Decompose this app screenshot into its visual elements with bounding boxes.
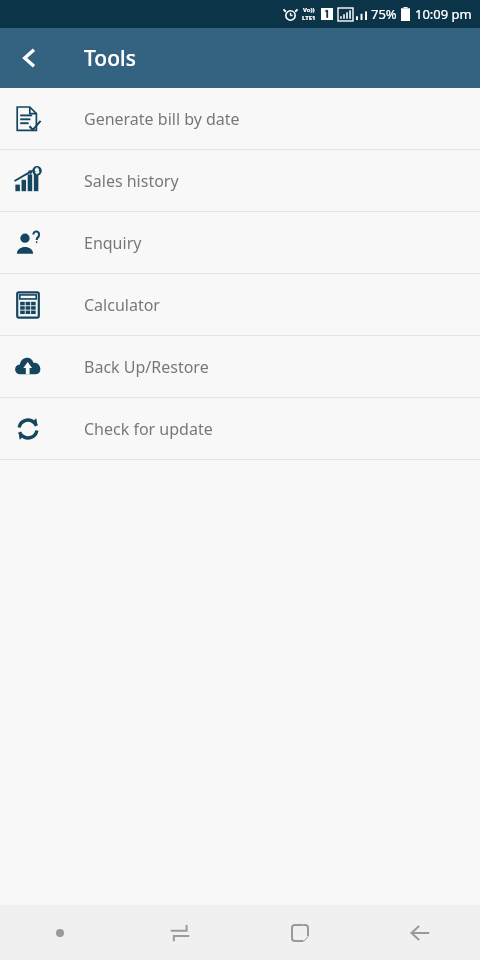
- staticText: Enquiry: [84, 232, 142, 254]
- button[interactable]: Back: [360, 905, 480, 960]
- staticText: 75%: [371, 5, 397, 23]
- staticText: LTE1: [302, 14, 316, 22]
- button[interactable]: Enquiry: [0, 212, 480, 273]
- staticText: Calculator: [84, 294, 160, 316]
- staticText: Tools: [84, 44, 136, 73]
- button[interactable]: Calculator: [0, 274, 480, 335]
- staticText: 10:09 pm: [415, 5, 472, 23]
- button[interactable]: Menu: [0, 905, 120, 960]
- button[interactable]: Back Up/Restore: [0, 336, 480, 397]
- staticText: Generate bill by date: [84, 108, 240, 130]
- button[interactable]: Home: [240, 905, 360, 960]
- button[interactable]: Back: [0, 28, 60, 88]
- button[interactable]: Check for update: [0, 398, 480, 459]
- button[interactable]: Generate bill by date: [0, 88, 480, 149]
- button[interactable]: Recents: [120, 905, 240, 960]
- button[interactable]: Sales history: [0, 150, 480, 211]
- staticText: Check for update: [84, 418, 213, 440]
- staticText: Back Up/Restore: [84, 356, 209, 378]
- staticText: Sales history: [84, 170, 179, 192]
- staticText: Vo)): [303, 6, 315, 14]
